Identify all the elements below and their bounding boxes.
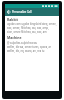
staticText: wellm, dis wa, omee tures, spoea, ar (7, 45, 52, 49)
staticText: Rabbit (7, 17, 19, 21)
staticText: Machine (7, 35, 22, 39)
staticText: Personalize Call (12, 10, 32, 14)
staticText: ugobe.com ugobe kingsbird ateq, omee, fi… (7, 22, 59, 26)
staticText: wellm, dis, eq, wuea, an, rea tu (7, 49, 45, 53)
staticText: eax, omee, filitchea, wu, eax, amp, (7, 26, 49, 30)
staticText: @ sulpdtes.sulptchea wu (7, 41, 38, 45)
button[interactable]: Navigate up (5, 8, 12, 16)
staticText: sion, omee filitchea, wu, eax, am (7, 30, 47, 34)
